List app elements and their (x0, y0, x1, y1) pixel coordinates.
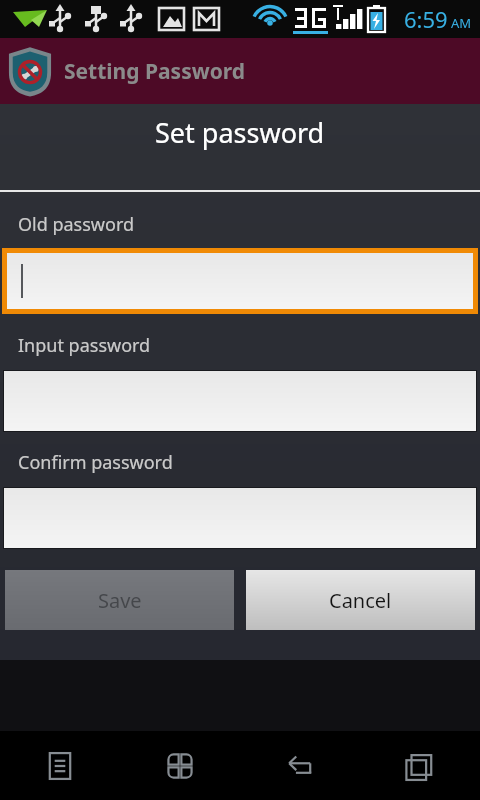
button[interactable]: Cancel (246, 570, 475, 630)
staticText: Old password (18, 212, 135, 237)
staticText: Set password (155, 114, 325, 151)
button[interactable]: Menu (0, 731, 120, 800)
staticText: Confirm password (18, 450, 173, 475)
staticText: Setting Password (64, 57, 246, 86)
button[interactable] (7, 253, 473, 309)
button[interactable] (4, 488, 476, 548)
button[interactable] (4, 371, 476, 431)
staticText: Cancel (329, 587, 392, 614)
staticText: AM (451, 14, 472, 32)
button[interactable]: Home (120, 731, 240, 800)
button[interactable]: Back (240, 731, 360, 800)
staticText: Save (98, 587, 142, 614)
button[interactable]: Save (5, 570, 234, 630)
button[interactable]: Recent apps (360, 731, 480, 800)
staticText: Input password (18, 333, 151, 358)
staticText: 6:59 (404, 4, 448, 34)
